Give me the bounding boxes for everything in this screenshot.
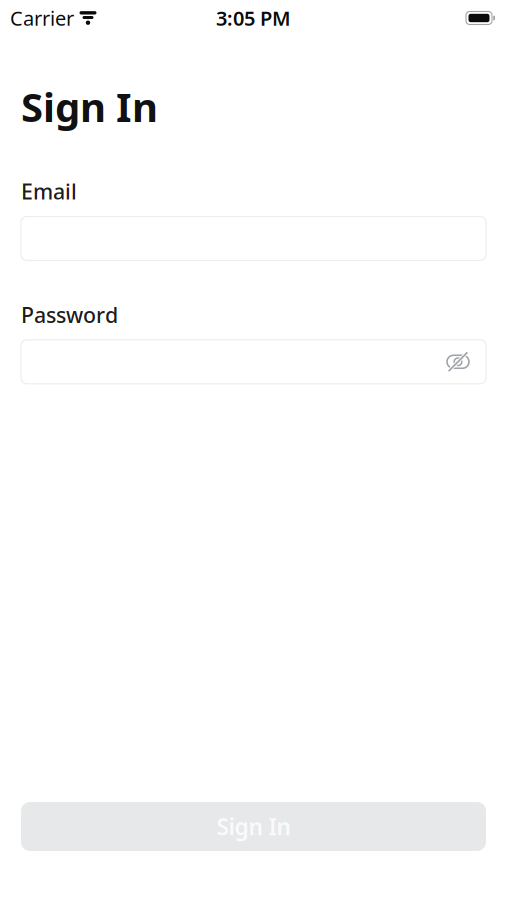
button[interactable]: Show password <box>437 341 479 383</box>
staticText: 3:05 PM <box>216 5 291 31</box>
staticText: Sign In <box>21 80 158 133</box>
staticText: Password <box>21 300 118 329</box>
staticText: Email <box>21 177 77 205</box>
staticText: Sign In <box>216 811 290 841</box>
staticText: Carrier <box>10 5 74 31</box>
